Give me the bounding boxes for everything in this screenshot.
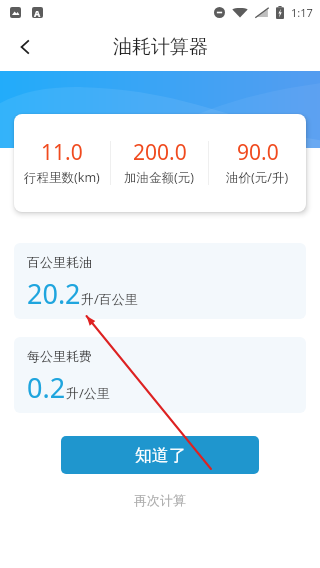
button[interactable]: 每公里耗费 — [14, 337, 306, 413]
staticText: 升/百公里 — [81, 290, 138, 308]
staticText: 油耗计算器 — [113, 35, 208, 59]
staticText: 油价(元/升) — [226, 169, 289, 186]
button[interactable]: 知道了 — [61, 436, 259, 474]
staticText: 加油金额(元) — [124, 169, 195, 186]
button[interactable]: 再次计算 — [0, 487, 320, 513]
staticText: 每公里耗费 — [27, 348, 92, 364]
staticText: 20.2 — [27, 275, 81, 312]
staticText: 升/公里 — [66, 384, 110, 402]
staticText: 90.0 — [237, 138, 279, 167]
staticText: 知道了 — [135, 445, 186, 466]
button[interactable]: Back — [3, 26, 47, 70]
button[interactable]: 百公里耗油 — [14, 243, 306, 319]
staticText: A — [34, 7, 41, 18]
staticText: 1:17 — [291, 5, 313, 20]
staticText: 200.0 — [133, 138, 187, 167]
staticText: 11.0 — [41, 138, 83, 167]
staticText: 行程里数(km) — [24, 169, 100, 186]
staticText: 0.2 — [27, 369, 66, 406]
staticText: 百公里耗油 — [27, 254, 92, 270]
staticText: 再次计算 — [134, 492, 186, 508]
